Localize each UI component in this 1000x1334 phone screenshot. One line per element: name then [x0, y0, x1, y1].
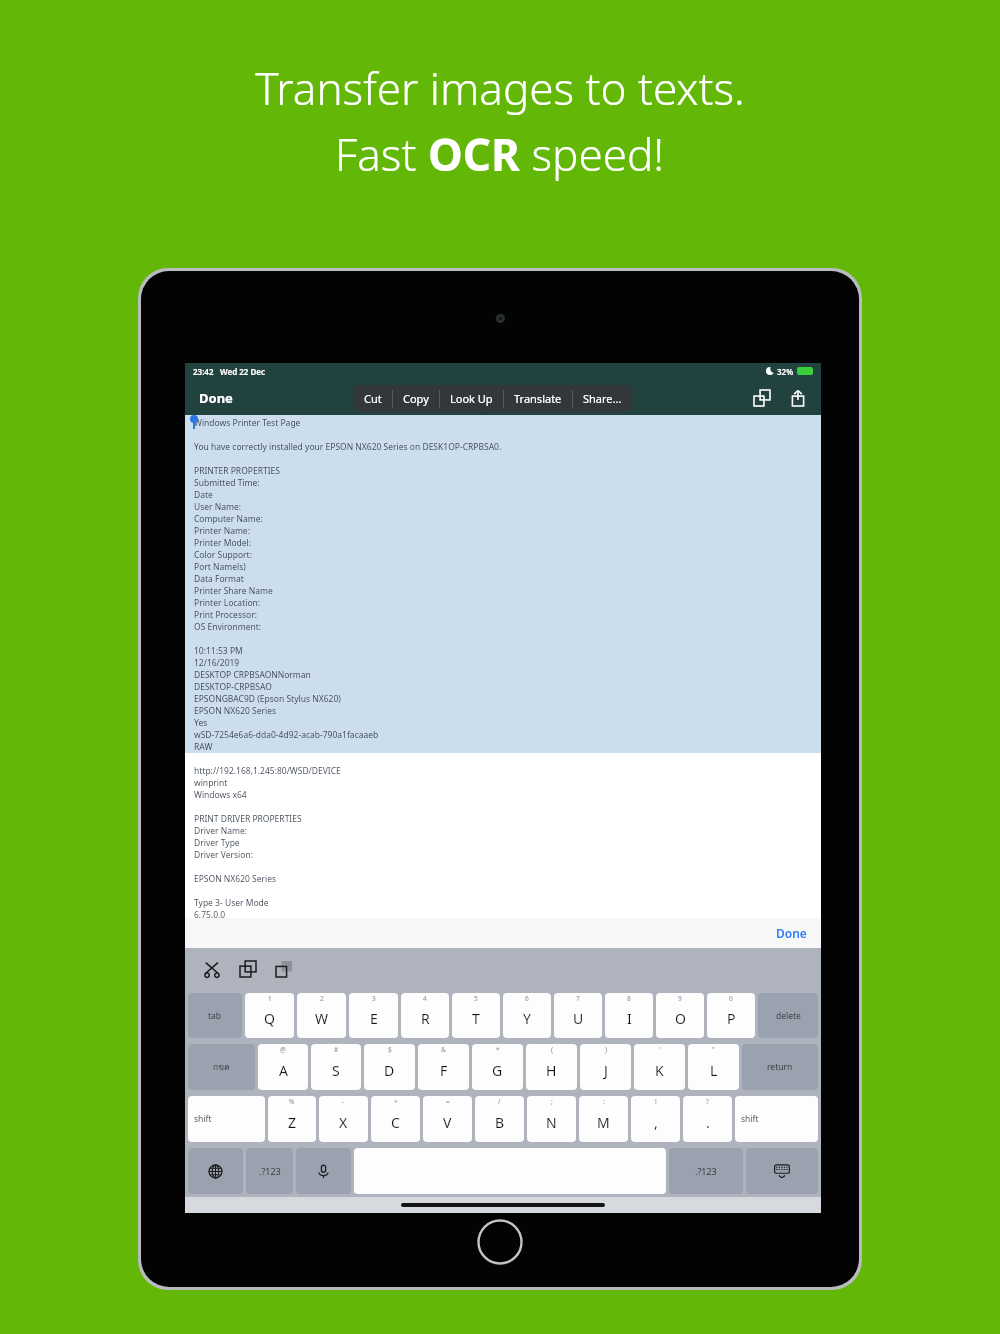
staticText: " [712, 1045, 715, 1054]
staticText: 3 [372, 994, 376, 1003]
button[interactable]: @ [258, 1044, 308, 1090]
button[interactable]: Copy [233, 954, 263, 984]
staticText: Port Namels) [194, 561, 246, 573]
button[interactable]: " [688, 1044, 739, 1090]
staticText: $ [388, 1045, 392, 1054]
button[interactable]: .?123 [246, 1148, 293, 1194]
staticText: winprint [194, 777, 228, 789]
staticText: T [472, 1009, 480, 1028]
button[interactable]: 1 [245, 993, 294, 1038]
button[interactable]: .?123 [669, 1148, 743, 1194]
staticText: Done [199, 389, 233, 407]
button[interactable]: Share [785, 385, 811, 411]
button[interactable]: Paste [269, 954, 299, 984]
staticText: X [339, 1113, 348, 1132]
button[interactable]: delete [758, 993, 818, 1038]
button[interactable]: shift [735, 1096, 818, 1142]
staticText: 10:11:53 PM [194, 645, 243, 657]
button[interactable]: ; [527, 1096, 576, 1142]
staticText: Y [523, 1009, 531, 1028]
button[interactable]: Cut [197, 954, 227, 984]
button[interactable]: 9 [656, 993, 704, 1038]
staticText: Translate [514, 391, 562, 406]
button[interactable]: 8 [605, 993, 653, 1038]
button[interactable]: ) [580, 1044, 631, 1090]
button[interactable]: Copy [749, 385, 775, 411]
button[interactable]: 5 [452, 993, 500, 1038]
staticText: : [603, 1097, 605, 1106]
button[interactable]: $ [364, 1044, 415, 1090]
staticText: Fast [335, 124, 428, 184]
button[interactable]: Look Up [440, 385, 503, 412]
button[interactable]: 2 [297, 993, 346, 1038]
button[interactable]: & [418, 1044, 469, 1090]
button[interactable]: 6 [503, 993, 551, 1038]
staticText: Computer Name: [194, 513, 263, 525]
staticText: C [391, 1113, 400, 1132]
staticText: ; [551, 1097, 553, 1106]
button[interactable]: shift [188, 1096, 265, 1142]
button[interactable]: * [472, 1044, 523, 1090]
staticText: Look Up [450, 391, 493, 406]
staticText: 7 [576, 994, 580, 1003]
staticText: .?123 [259, 1165, 281, 1177]
staticText: Driver Type [194, 837, 240, 849]
button[interactable]: ' [634, 1044, 685, 1090]
button[interactable]: Translate [504, 385, 572, 412]
staticText: * [496, 1045, 500, 1054]
button[interactable]: # [311, 1044, 361, 1090]
staticText: speed! [520, 124, 665, 184]
staticText: ! [655, 1097, 657, 1106]
button[interactable]: Done [762, 918, 821, 948]
staticText: EPSON NX620 Series [194, 873, 277, 885]
staticText: I [627, 1009, 632, 1028]
staticText: 23:42 [193, 366, 214, 377]
staticText: RAW [194, 741, 213, 753]
staticText: + [394, 1097, 398, 1106]
button[interactable]: : [579, 1096, 628, 1142]
button[interactable]: 3 [349, 993, 398, 1038]
staticText: Printer Share Name [194, 585, 273, 597]
button[interactable]: Copy [393, 385, 439, 412]
staticText: ' [659, 1045, 661, 1054]
button[interactable]: กขค [188, 1044, 255, 1090]
staticText: return [767, 1061, 793, 1073]
staticText: 9 [678, 994, 682, 1003]
button[interactable]: / [475, 1096, 524, 1142]
button[interactable]: + [371, 1096, 420, 1142]
button[interactable]: Share... [573, 385, 632, 412]
button[interactable]: - [319, 1096, 368, 1142]
button[interactable]: return [742, 1044, 818, 1090]
staticText: D [384, 1061, 395, 1080]
staticText: Printer Model: [194, 537, 252, 549]
button[interactable]: 4 [401, 993, 449, 1038]
staticText: กขค [213, 1060, 230, 1074]
button[interactable]: Done [195, 385, 237, 411]
staticText: 32% [777, 366, 794, 377]
button[interactable]: ( [526, 1044, 577, 1090]
button[interactable]: ! [631, 1096, 680, 1142]
button[interactable]: = [423, 1096, 472, 1142]
button[interactable]: Hide keyboard [746, 1148, 818, 1194]
button[interactable]: ? [683, 1096, 732, 1142]
staticText: shift [194, 1113, 212, 1125]
staticText: Type 3- User Mode [194, 897, 269, 909]
button[interactable]: Dictation [296, 1148, 351, 1194]
staticText: Z [288, 1113, 297, 1132]
button[interactable]: 0 [707, 993, 755, 1038]
button[interactable]: Globe [188, 1148, 243, 1194]
staticText: G [492, 1061, 503, 1080]
staticText: 1 [268, 994, 272, 1003]
staticText: A [279, 1061, 288, 1080]
button[interactable]: Cut [354, 385, 392, 412]
staticText: wSD-7254e6a6-dda0-4d92-acab-790a1facaaeb [194, 729, 379, 741]
button[interactable]: 7 [554, 993, 602, 1038]
staticText: R [421, 1009, 430, 1028]
staticText: - [342, 1097, 345, 1106]
staticText: @ [280, 1045, 286, 1054]
staticText: OCR [428, 124, 520, 184]
button[interactable]: tab [188, 993, 242, 1038]
button[interactable]: % [268, 1096, 316, 1142]
staticText: Share... [583, 391, 622, 406]
